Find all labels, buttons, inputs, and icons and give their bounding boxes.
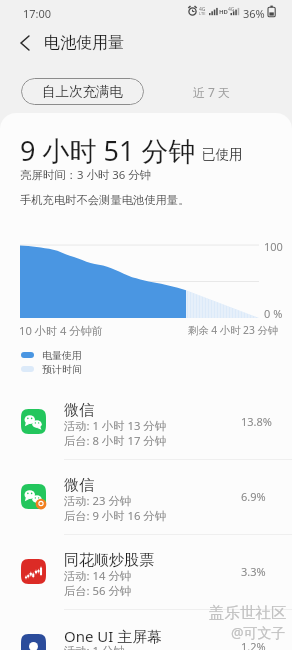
staticText: 剩余 4 小时 23 分钟: [188, 323, 279, 337]
staticText: 4G: [199, 6, 206, 13]
button[interactable]: 近 7 天: [183, 78, 241, 105]
staticText: 预计时间: [42, 363, 82, 376]
staticText: 电池使用量: [44, 33, 124, 53]
staticText: 4G: [228, 6, 235, 13]
button[interactable]: 微信: [0, 459, 292, 534]
button[interactable]: Back: [8, 26, 42, 60]
staticText: 活动: 1 分钟: [64, 643, 125, 650]
button[interactable]: 自上次充满电: [21, 78, 144, 105]
staticText: 1.2%: [241, 639, 266, 650]
staticText: 微信: [64, 401, 94, 420]
staticText: 后台: 8 小时 17 分钟: [64, 433, 166, 448]
staticText: 10 小时 4 分钟前: [19, 323, 103, 338]
staticText: 6.9%: [241, 489, 266, 504]
staticText: 100: [264, 239, 283, 254]
staticText: 同花顺炒股票: [64, 551, 154, 570]
staticText: @可文子: [231, 623, 286, 642]
staticText: LTE: [199, 11, 206, 16]
staticText: 手机充电时不会测量电池使用量。: [20, 193, 190, 207]
button[interactable]: One UI 主屏幕: [0, 609, 292, 650]
staticText: 亮屏时间：3 小时 36 分钟: [20, 167, 151, 183]
staticText: 盖乐世社区: [209, 603, 287, 623]
staticText: 17:00: [23, 6, 52, 21]
staticText: 活动: 1 小时 13 分钟: [64, 418, 166, 433]
staticText: 已使用: [202, 146, 243, 163]
button[interactable]: 微信: [0, 384, 292, 459]
staticText: 微信: [64, 476, 94, 495]
staticText: 13.8%: [241, 414, 272, 429]
staticText: 36%: [243, 6, 265, 21]
staticText: One UI 主屏幕: [64, 626, 163, 646]
staticText: HD: [219, 8, 228, 16]
staticText: 活动: 14 分钟: [64, 568, 132, 583]
staticText: 电量使用: [42, 349, 82, 362]
staticText: 3.3%: [241, 564, 266, 579]
staticText: 活动: 23 分钟: [64, 493, 132, 508]
staticText: 后台: 56 分钟: [64, 583, 132, 598]
staticText: 0 %: [264, 306, 283, 321]
staticText: 后台: 9 小时 16 分钟: [64, 508, 166, 523]
staticText: 自上次充满电: [42, 83, 123, 100]
staticText: 近 7 天: [193, 84, 231, 100]
staticText: 9 小时 51 分钟: [20, 132, 196, 169]
button[interactable]: 同花顺炒股票: [0, 534, 292, 609]
